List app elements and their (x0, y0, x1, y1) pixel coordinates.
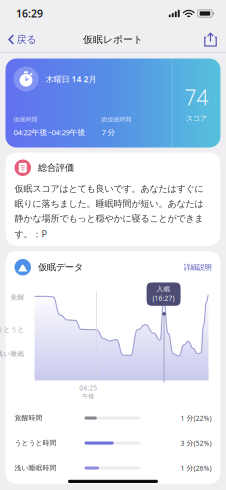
staticText: うとうと時間 (14, 439, 56, 447)
staticText: 入眠 (157, 285, 171, 293)
staticText: 04:22午後~04:29午後 (13, 127, 85, 137)
staticText: (16:27) (153, 294, 175, 303)
button[interactable]: 戻る (3, 29, 43, 50)
staticText: 覚醒時間 (14, 414, 42, 422)
staticText: 総合評価 (38, 162, 74, 174)
staticText: 仮眠時間 (13, 116, 37, 123)
staticText: 戻る (17, 33, 37, 46)
staticText: 1 分(22%) (180, 413, 211, 423)
staticText: 仮眠データ (38, 261, 83, 273)
staticText: 総仮眠時間 (101, 116, 131, 123)
staticText: 浅い睡眠 (0, 350, 24, 358)
staticText: 浅い睡眠時間 (14, 464, 56, 472)
staticText: スコア (186, 114, 207, 123)
staticText: 覚醒 (10, 293, 24, 301)
staticText: 仮眠レポート (83, 33, 143, 46)
staticText: 仮眠スコアはとても良いです。あなたはすぐに眠りに落ちました。睡眠時間が短い。あな… (14, 183, 203, 240)
button[interactable]: 共有 (198, 30, 223, 49)
button[interactable]: 詳細説明 (177, 260, 211, 275)
staticText: 午後 (82, 392, 94, 400)
staticText: 04:25 (79, 383, 97, 392)
staticText: うとうと (0, 325, 24, 334)
staticText: 16:29 (16, 6, 43, 21)
staticText: 木曜日 14 2月 (45, 73, 96, 85)
staticText: 詳細説明 (183, 263, 211, 272)
staticText: 74 (184, 83, 208, 112)
staticText: 1 分(26%) (180, 463, 211, 473)
staticText: 7 分 (101, 127, 115, 137)
staticText: 3 分(52%) (180, 438, 211, 448)
